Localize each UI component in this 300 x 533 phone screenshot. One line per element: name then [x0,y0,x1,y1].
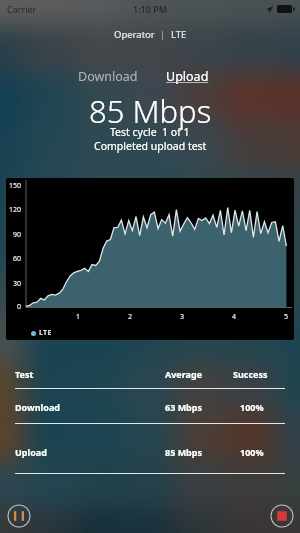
staticText: 2 [128,312,133,322]
staticText: Upload [166,68,209,85]
staticText: 60 [13,254,22,264]
staticText: 85 Mbps [89,90,212,132]
staticText: 30 [13,279,22,289]
button[interactable]: Download [70,66,146,87]
button[interactable]: Stop [270,504,294,528]
button[interactable]: Pause [7,504,31,528]
staticText: 1 [76,312,81,322]
staticText: Download [15,401,60,413]
staticText: 0 [17,302,22,312]
staticText: 63 Mbps [165,401,203,413]
staticText: Carrier [7,3,37,15]
staticText: 5 [284,312,289,322]
staticText: Operator [114,28,155,41]
staticText: Download [78,68,138,85]
staticText: LTE [171,28,187,41]
staticText: | [160,28,166,41]
staticText: 100% [240,401,264,413]
staticText: 100% [240,446,264,458]
staticText: Completed upload test [94,139,207,153]
staticText: Upload [15,446,47,458]
staticText: 3 [180,312,185,322]
button[interactable]: Test [0,368,300,384]
staticText: 120 [9,205,22,215]
button[interactable]: Upload [158,66,217,87]
button[interactable]: Download [0,401,300,417]
staticText: 1:10 PM [133,3,167,15]
staticText: Test cycle 1 of 1 [110,125,190,139]
staticText: 85 Mbps [165,446,203,458]
button[interactable]: Upload [0,446,300,462]
staticText: 150 [9,181,22,191]
staticText: Average [165,368,203,380]
staticText: Test [15,368,34,380]
staticText: 90 [13,230,22,240]
staticText: LTE [39,328,52,338]
staticText: 4 [232,312,237,322]
staticText: Success [233,368,268,380]
